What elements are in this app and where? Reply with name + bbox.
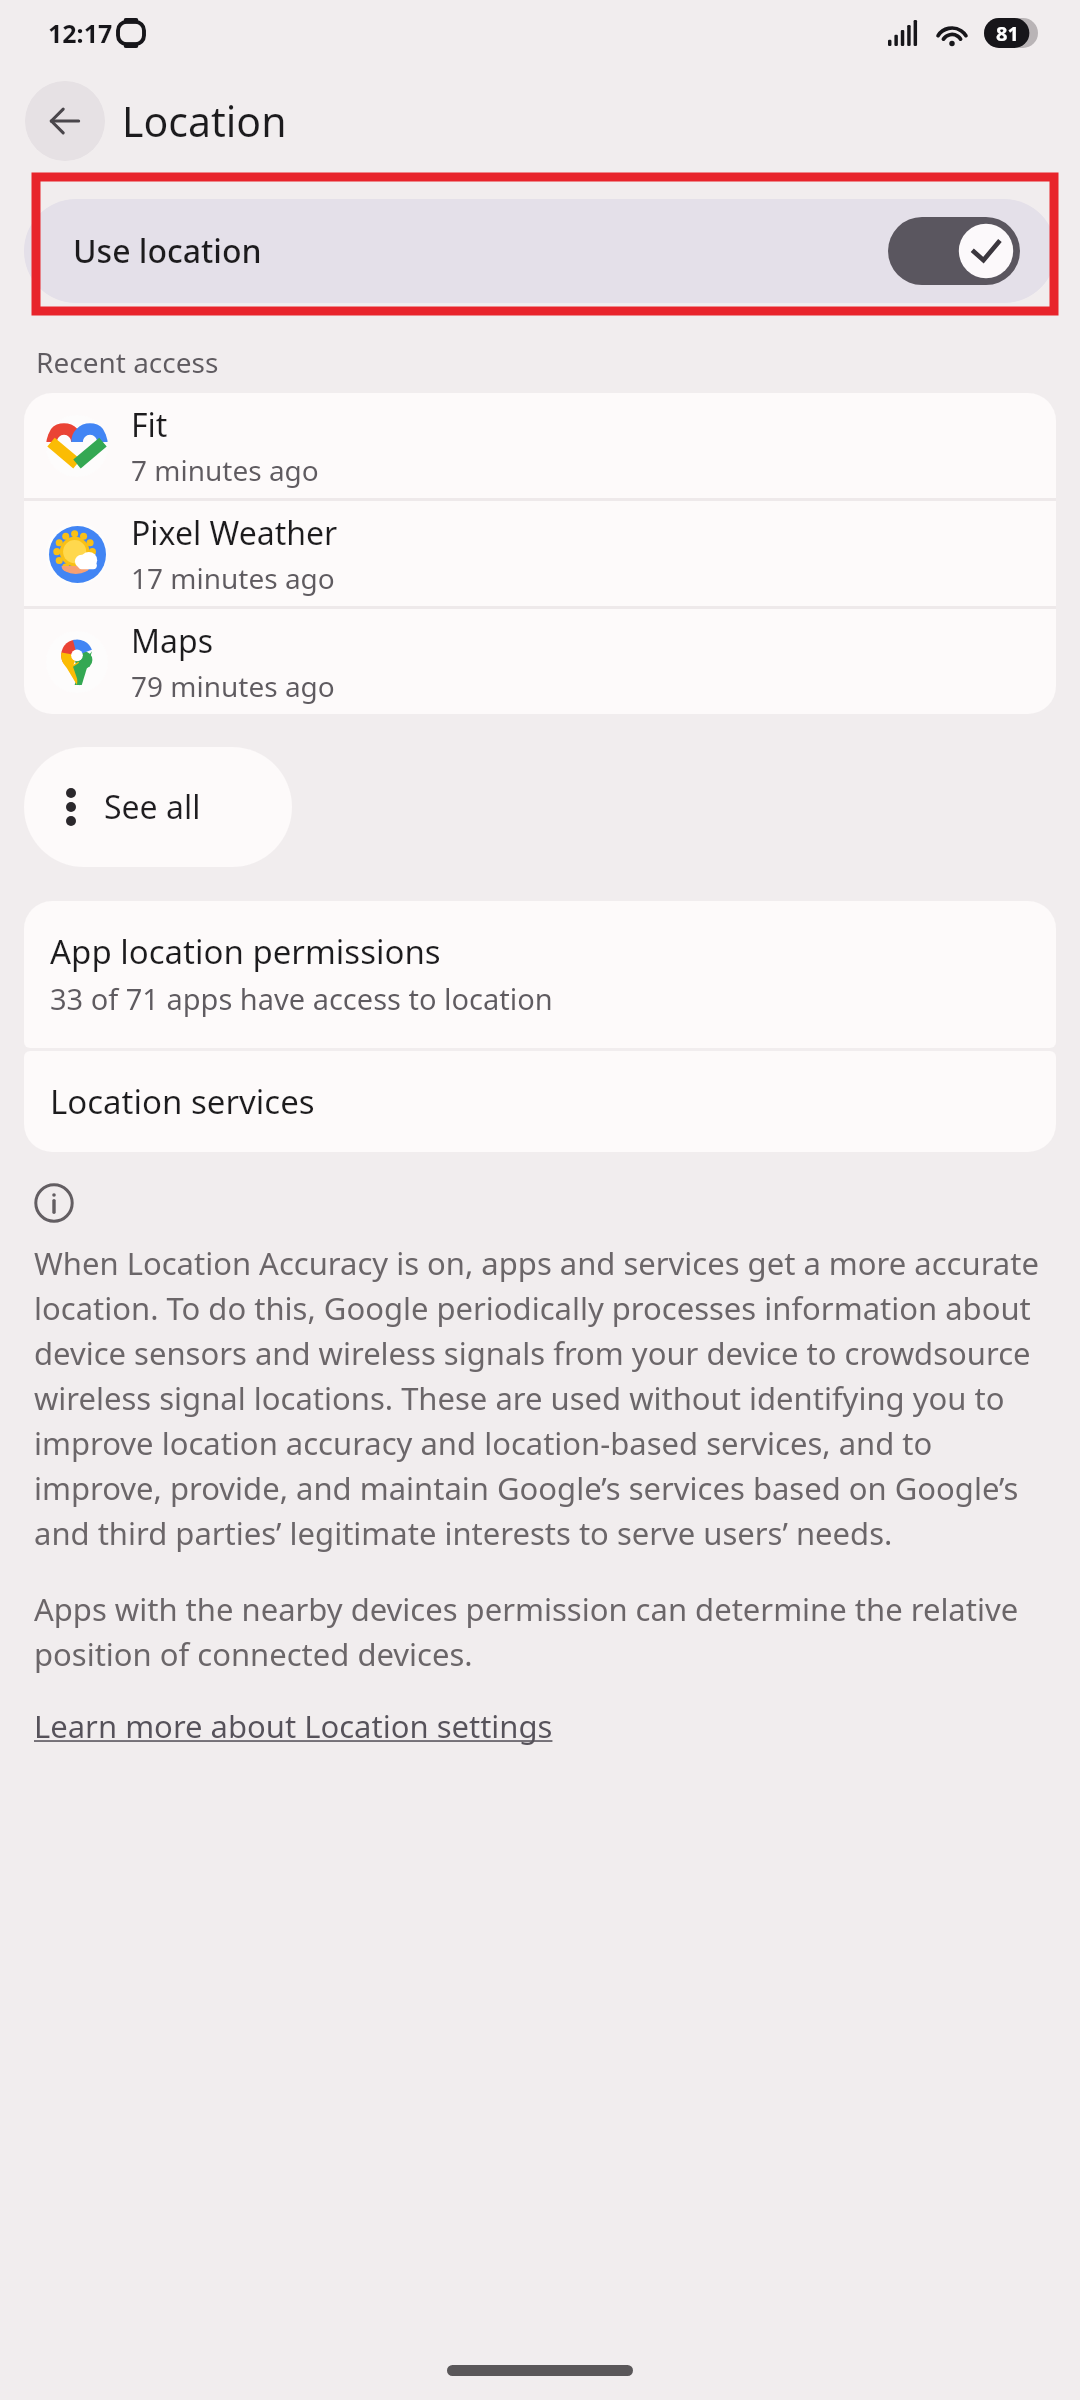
button[interactable]: App location permissions xyxy=(24,901,1056,1048)
button[interactable]: Fit xyxy=(24,393,1056,498)
staticText: Apps with the nearby devices permission … xyxy=(34,1588,1046,1675)
staticText: 33 of 71 apps have access to location xyxy=(50,979,553,1018)
button[interactable]: Maps xyxy=(24,609,1056,714)
staticText: Location xyxy=(122,93,287,149)
button[interactable]: Pixel Weather xyxy=(24,501,1056,606)
staticText: See all xyxy=(104,785,201,829)
staticText: 79 minutes ago xyxy=(131,667,335,705)
staticText: App location permissions xyxy=(50,929,441,974)
staticText: When Location Accuracy is on, apps and s… xyxy=(34,1242,1046,1554)
staticText: Recent access xyxy=(36,343,219,381)
staticText: Use location xyxy=(73,229,262,273)
button[interactable]: Location services xyxy=(24,1051,1056,1152)
button[interactable]: Use location xyxy=(24,199,1056,303)
staticText: Pixel Weather xyxy=(131,511,338,555)
button[interactable]: See all xyxy=(24,747,292,867)
staticText: Location services xyxy=(50,1079,315,1124)
staticText: 17 minutes ago xyxy=(131,559,335,597)
button[interactable]: Learn more about Location settings xyxy=(34,1705,553,1747)
staticText: 81 xyxy=(996,20,1019,47)
staticText: 12:17 xyxy=(48,16,113,50)
staticText: Fit xyxy=(131,403,168,447)
button[interactable]: Back xyxy=(25,81,105,161)
staticText: 7 minutes ago xyxy=(131,451,319,489)
staticText: Maps xyxy=(131,619,213,663)
